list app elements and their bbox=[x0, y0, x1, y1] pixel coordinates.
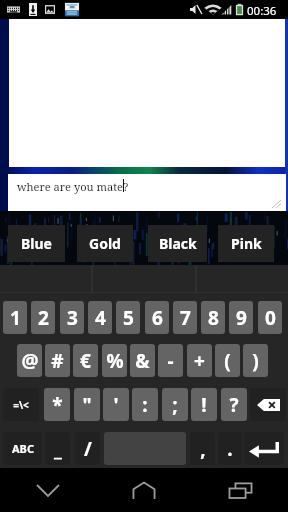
button[interactable]: : bbox=[132, 388, 158, 421]
button[interactable]: Blue bbox=[8, 225, 65, 262]
staticText: 3 bbox=[67, 305, 78, 331]
button[interactable]: ' bbox=[103, 388, 129, 421]
button[interactable]: Gold bbox=[77, 225, 133, 262]
staticText: € bbox=[80, 348, 91, 374]
staticText: ; bbox=[172, 392, 178, 418]
button[interactable]: 5 bbox=[116, 301, 140, 334]
button[interactable]: - bbox=[158, 344, 183, 377]
button[interactable]: ! bbox=[191, 388, 217, 421]
button[interactable]: 3 bbox=[60, 301, 84, 334]
button[interactable]: ABC bbox=[3, 432, 42, 465]
staticText: 5 bbox=[123, 305, 134, 331]
button[interactable]: , bbox=[190, 432, 215, 465]
staticText: 0 bbox=[265, 305, 276, 331]
staticText: @ bbox=[21, 348, 39, 374]
button[interactable]: ? bbox=[221, 388, 247, 421]
button[interactable]: 8 bbox=[201, 301, 225, 334]
staticText: % bbox=[106, 348, 124, 374]
button[interactable]: _ bbox=[45, 432, 70, 465]
staticText: " bbox=[82, 392, 92, 418]
button[interactable]: ; bbox=[162, 388, 188, 421]
staticText: & bbox=[135, 348, 150, 374]
button[interactable]: . bbox=[218, 432, 242, 465]
staticText: Blue bbox=[21, 234, 52, 253]
staticText: # bbox=[51, 348, 64, 374]
button[interactable]: 7 bbox=[173, 301, 197, 334]
button[interactable]: 9 bbox=[229, 301, 253, 334]
button[interactable]: Recents bbox=[192, 468, 288, 512]
staticText: ( bbox=[224, 348, 231, 374]
staticText: ? bbox=[229, 392, 239, 418]
staticText: 1 bbox=[10, 305, 21, 331]
button[interactable]: # bbox=[45, 344, 70, 377]
button[interactable]: € bbox=[73, 344, 98, 377]
staticText: 9 bbox=[236, 305, 247, 331]
button[interactable]: 4 bbox=[88, 301, 112, 334]
button[interactable]: & bbox=[130, 344, 155, 377]
staticText: Black bbox=[159, 234, 197, 253]
staticText: _ bbox=[54, 436, 62, 462]
staticText: , bbox=[200, 436, 206, 462]
button[interactable]: " bbox=[74, 388, 100, 421]
button[interactable]: 6 bbox=[145, 301, 169, 334]
button[interactable]: ) bbox=[243, 344, 268, 377]
staticText: 6 bbox=[152, 305, 163, 331]
button[interactable]: Black bbox=[148, 225, 207, 262]
staticText: 8 bbox=[208, 305, 219, 331]
button[interactable]: Enter bbox=[244, 432, 284, 465]
button[interactable]: % bbox=[102, 344, 127, 377]
staticText: Gold bbox=[89, 234, 121, 253]
staticText: / bbox=[84, 436, 92, 462]
staticText: 4 bbox=[95, 305, 106, 331]
staticText: : bbox=[142, 392, 148, 418]
button[interactable]: 0 bbox=[258, 301, 282, 334]
staticText: 7 bbox=[180, 305, 191, 331]
staticText: * bbox=[52, 392, 63, 418]
staticText: 2 bbox=[38, 305, 49, 331]
staticText: . bbox=[227, 436, 233, 462]
staticText: - bbox=[167, 348, 174, 374]
button[interactable]: Hide keyboard bbox=[0, 468, 96, 512]
staticText: Pink bbox=[231, 234, 262, 253]
button[interactable]: @ bbox=[17, 344, 42, 377]
button[interactable]: + bbox=[187, 344, 212, 377]
button[interactable]: 2 bbox=[31, 301, 55, 334]
staticText: ) bbox=[252, 348, 259, 374]
button[interactable]: =\< bbox=[3, 388, 39, 421]
staticText: ! bbox=[201, 392, 207, 418]
button[interactable]: Pink bbox=[218, 225, 274, 262]
button[interactable]: where are you mate? bbox=[8, 174, 286, 211]
button[interactable]: Home bbox=[96, 468, 192, 512]
staticText: =\< bbox=[13, 398, 29, 412]
staticText: ABC bbox=[12, 441, 34, 456]
button[interactable]: ( bbox=[215, 344, 240, 377]
staticText: + bbox=[194, 348, 205, 374]
staticText: ' bbox=[113, 392, 119, 418]
button[interactable]: / bbox=[75, 432, 100, 465]
button[interactable]: * bbox=[44, 388, 70, 421]
staticText: 00:36 bbox=[247, 3, 277, 19]
button[interactable]: 1 bbox=[3, 301, 27, 334]
button[interactable]: Backspace bbox=[250, 388, 286, 421]
staticText: where are you mate? bbox=[17, 179, 129, 194]
